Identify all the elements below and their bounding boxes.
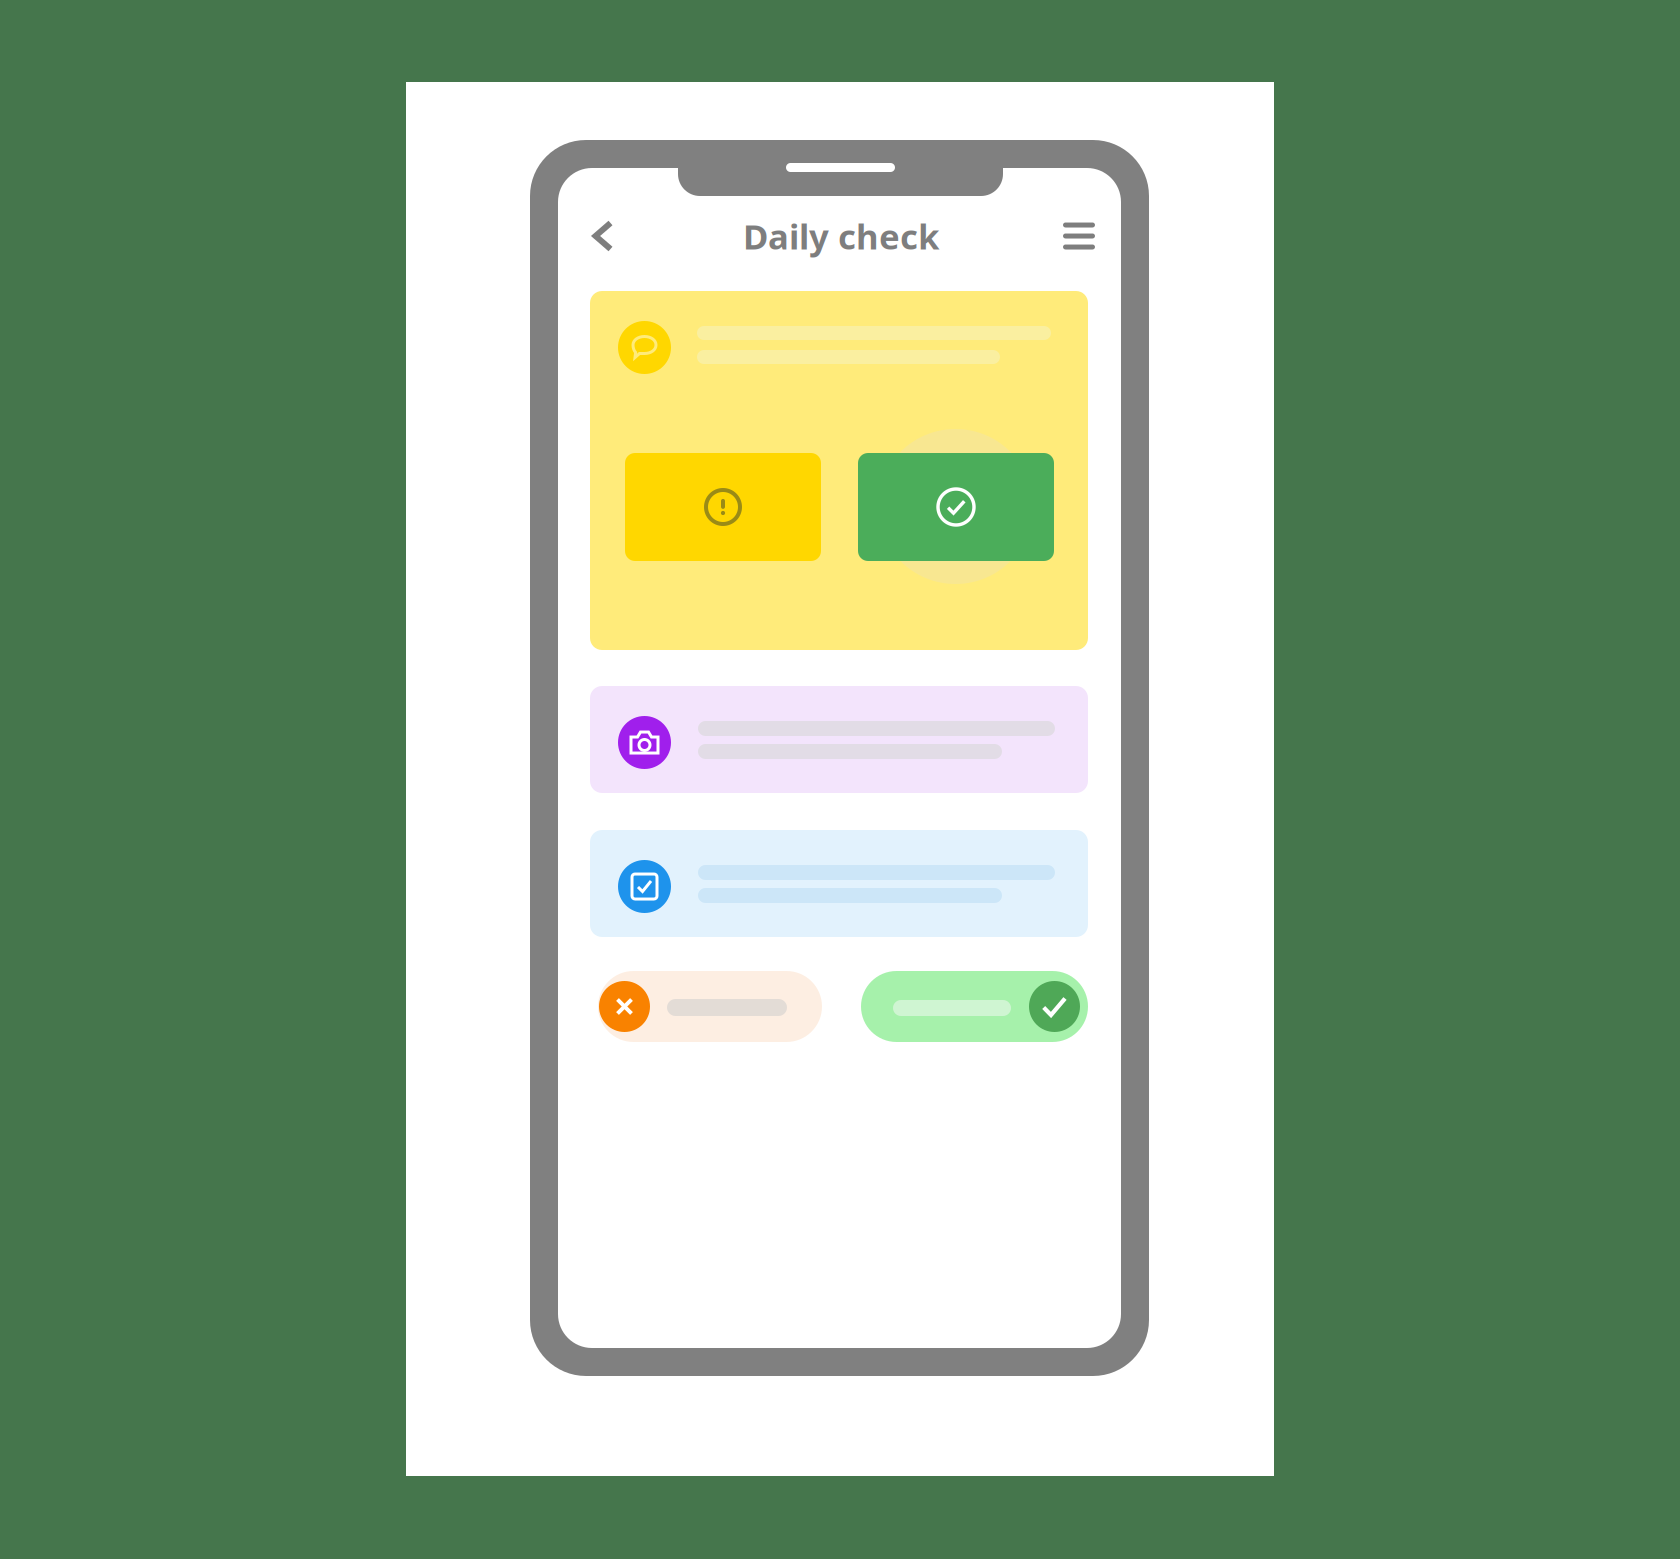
button[interactable]: Done	[858, 453, 1054, 561]
button[interactable]: Back	[575, 208, 631, 264]
button[interactable]: Menu	[1051, 208, 1107, 264]
button[interactable]: Approved	[861, 971, 1088, 1042]
button[interactable]: Rejected	[598, 971, 822, 1042]
button[interactable]: Checklist entry	[590, 830, 1088, 937]
staticText: Daily check	[743, 213, 939, 259]
button[interactable]: Needs attention	[625, 453, 821, 561]
button[interactable]: Photo entry	[590, 686, 1088, 793]
